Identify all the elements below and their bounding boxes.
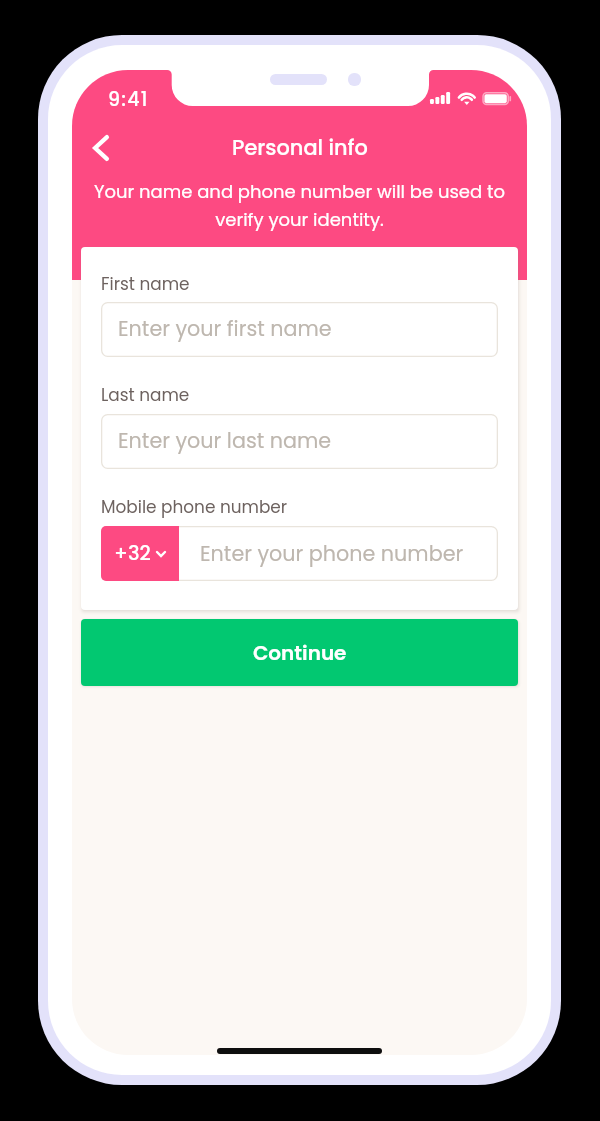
button[interactable]: Back — [77, 126, 125, 170]
staticText: Enter your first name — [118, 314, 332, 343]
staticText: Continue — [253, 639, 347, 667]
staticText: +32 — [114, 540, 151, 567]
staticText: 9:41 — [108, 86, 149, 113]
staticText: First name — [101, 272, 190, 296]
button[interactable]: Country code +32 — [101, 526, 179, 581]
button[interactable]: Enter your last name — [101, 414, 498, 469]
staticText: Enter your phone number — [200, 539, 464, 568]
button[interactable]: Continue — [81, 619, 518, 686]
staticText: Your name and phone number will be used … — [90, 179, 509, 232]
button[interactable]: Enter your first name — [101, 302, 498, 357]
staticText: Personal info — [232, 133, 368, 159]
staticText: Last name — [101, 383, 190, 407]
staticText: Enter your last name — [118, 426, 332, 455]
staticText: Mobile phone number — [101, 495, 288, 519]
